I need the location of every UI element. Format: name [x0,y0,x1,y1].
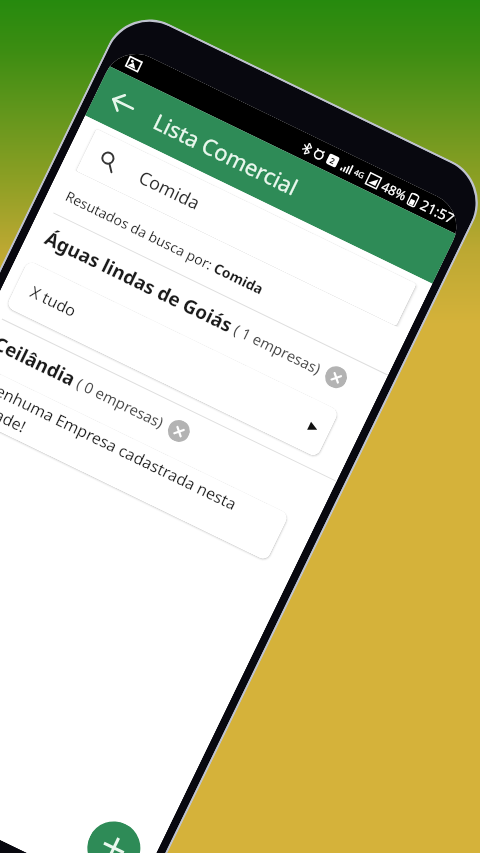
button[interactable]: Comida [76,129,417,326]
button[interactable]: Nenhuma Empresa cadastrada nesta cidade! [0,364,289,561]
button[interactable]: Voltar [94,74,152,133]
button[interactable]: Águas lindas de Goiás [41,225,374,405]
staticText: Resutados da busca por: Comida [62,186,267,298]
staticText: X tudo [26,281,80,322]
staticText: Comida [135,165,204,216]
button[interactable]: X tudo [6,260,340,458]
staticText: Lista Comercial [149,106,303,201]
button[interactable]: Ceilândia [0,330,323,510]
staticText: 48% [378,177,410,205]
button[interactable]: Remover [321,362,351,392]
button[interactable]: Remover [164,416,193,446]
staticText: ( 0 empresas) [70,371,168,432]
staticText: Nenhuma Empresa cadastrada nesta cidade! [0,374,277,552]
button[interactable]: Adicionar empresa [78,812,149,853]
staticText: Águas lindas de Goiás [41,225,237,338]
staticText: Ceilândia [0,330,80,392]
staticText: ( 1 empresas) [227,318,325,379]
staticText: 2 [328,154,337,167]
staticText: 4G [352,166,367,181]
staticText: 21:57 [417,195,458,228]
